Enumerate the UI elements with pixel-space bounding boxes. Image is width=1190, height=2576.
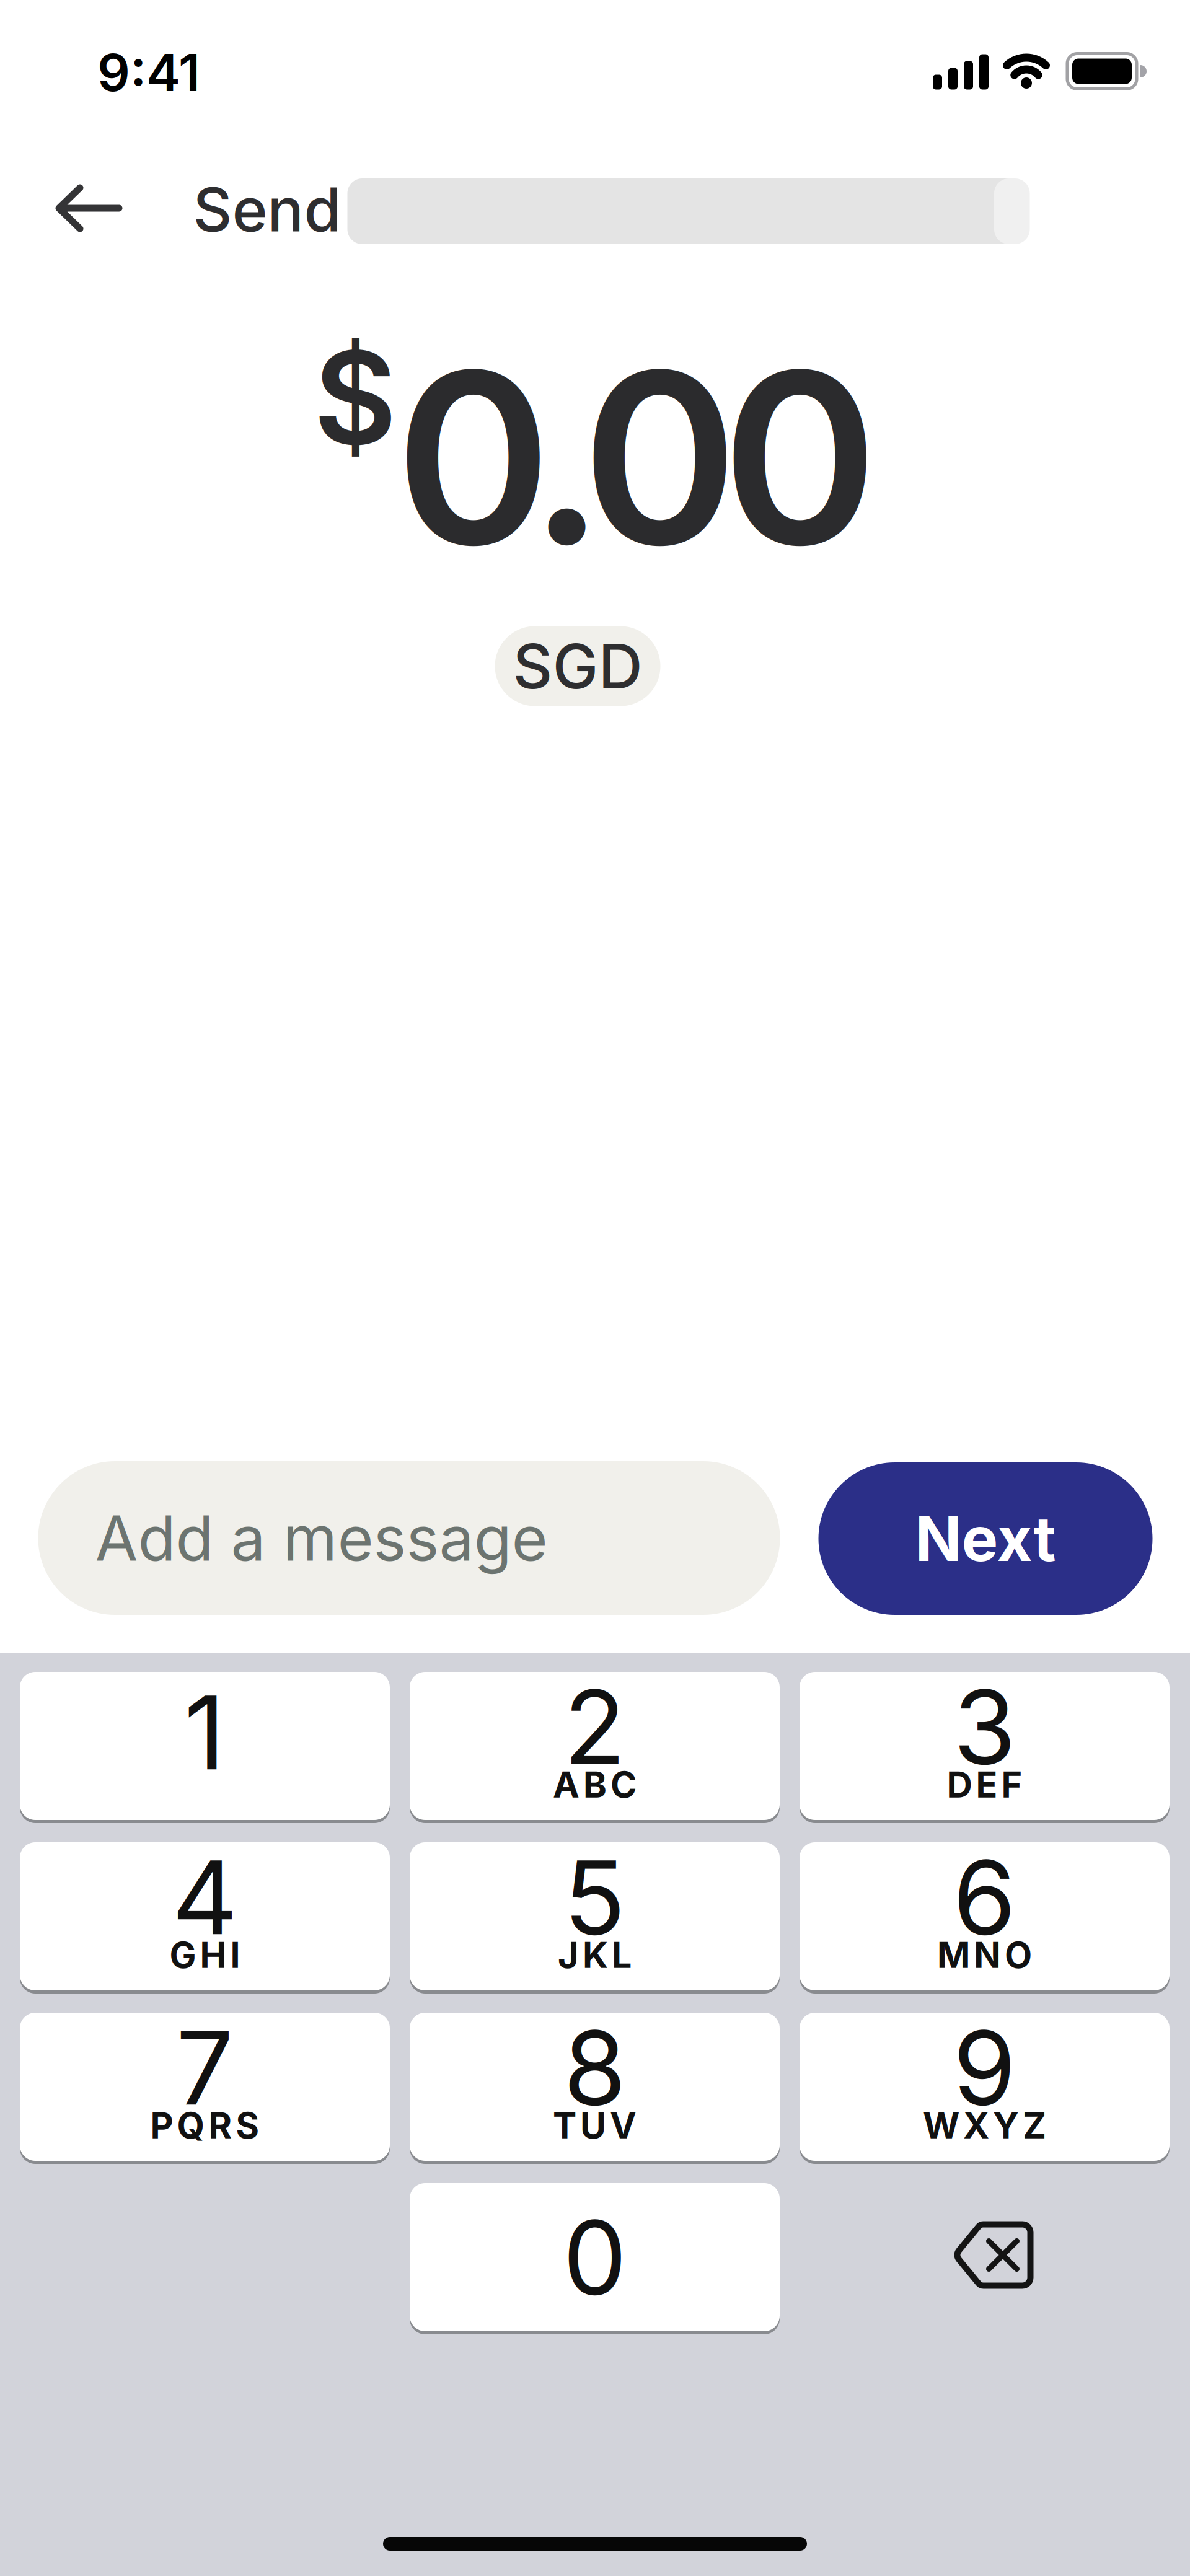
- staticText: JKL: [558, 1934, 632, 1977]
- staticText: GHI: [170, 1934, 240, 1977]
- staticText: DEF: [947, 1763, 1022, 1806]
- button[interactable]: 0: [410, 2183, 780, 2334]
- staticText: 4: [172, 1836, 238, 1959]
- button[interactable]: Back: [43, 171, 136, 245]
- button[interactable]: SGD: [495, 626, 660, 706]
- button[interactable]: 9: [800, 2013, 1170, 2164]
- staticText: 0: [563, 2196, 627, 2319]
- button[interactable]: Next: [818, 1462, 1153, 1615]
- staticText: Add a message: [95, 1501, 548, 1576]
- staticText: 1: [184, 1671, 226, 1794]
- button[interactable]: Add a message: [38, 1461, 780, 1615]
- staticText: 7: [176, 2006, 234, 2129]
- button[interactable]: 1: [20, 1672, 390, 1823]
- staticText: ABC: [553, 1763, 637, 1806]
- staticText: 9: [953, 2006, 1016, 2129]
- staticText: WXYZ: [923, 2104, 1046, 2147]
- button[interactable]: 8: [410, 2013, 780, 2164]
- button[interactable]: 4: [20, 1842, 390, 1994]
- staticText: SGD: [513, 629, 642, 703]
- staticText: 5: [564, 1836, 626, 1959]
- staticText: PQRS: [150, 2104, 259, 2147]
- button[interactable]: 7: [20, 2013, 390, 2164]
- staticText: 2: [564, 1665, 626, 1788]
- staticText: MNO: [937, 1934, 1032, 1977]
- staticText: 6: [953, 1836, 1016, 1959]
- button[interactable]: 2: [410, 1672, 780, 1823]
- staticText: 9:41: [97, 42, 200, 103]
- staticText: Next: [915, 1502, 1056, 1576]
- button[interactable]: Delete: [901, 2181, 1086, 2329]
- staticText: Send: [193, 173, 341, 246]
- staticText: 3: [953, 1665, 1016, 1788]
- button[interactable]: 6: [800, 1842, 1170, 1994]
- staticText: $: [314, 320, 397, 475]
- button[interactable]: 5: [410, 1842, 780, 1994]
- staticText: 0.00: [395, 314, 878, 601]
- staticText: TUV: [553, 2104, 637, 2147]
- button[interactable]: 3: [800, 1672, 1170, 1823]
- staticText: 8: [563, 2006, 626, 2129]
